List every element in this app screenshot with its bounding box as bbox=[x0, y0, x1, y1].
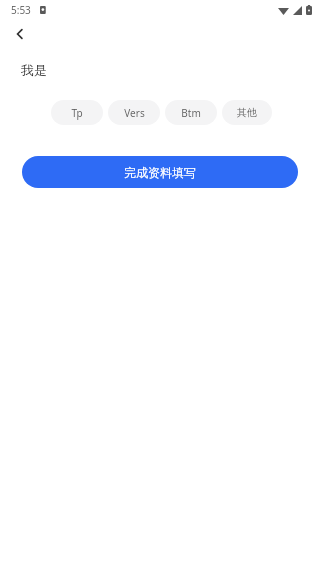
staticText: Vers bbox=[124, 106, 145, 120]
button[interactable]: 完成资料填写 bbox=[22, 156, 298, 188]
staticText: Tp bbox=[71, 106, 83, 120]
staticText: 完成资料填写 bbox=[124, 165, 196, 180]
button[interactable]: Btm bbox=[165, 100, 217, 125]
staticText: Btm bbox=[181, 106, 201, 120]
staticText: 其他 bbox=[237, 106, 257, 119]
button[interactable]: 其他 bbox=[222, 100, 272, 125]
button[interactable]: Tp bbox=[51, 100, 103, 125]
staticText: 我是 bbox=[21, 62, 47, 78]
button[interactable]: Vers bbox=[108, 100, 160, 125]
button[interactable]: Back bbox=[7, 21, 33, 47]
staticText: 5:53 bbox=[11, 3, 31, 17]
